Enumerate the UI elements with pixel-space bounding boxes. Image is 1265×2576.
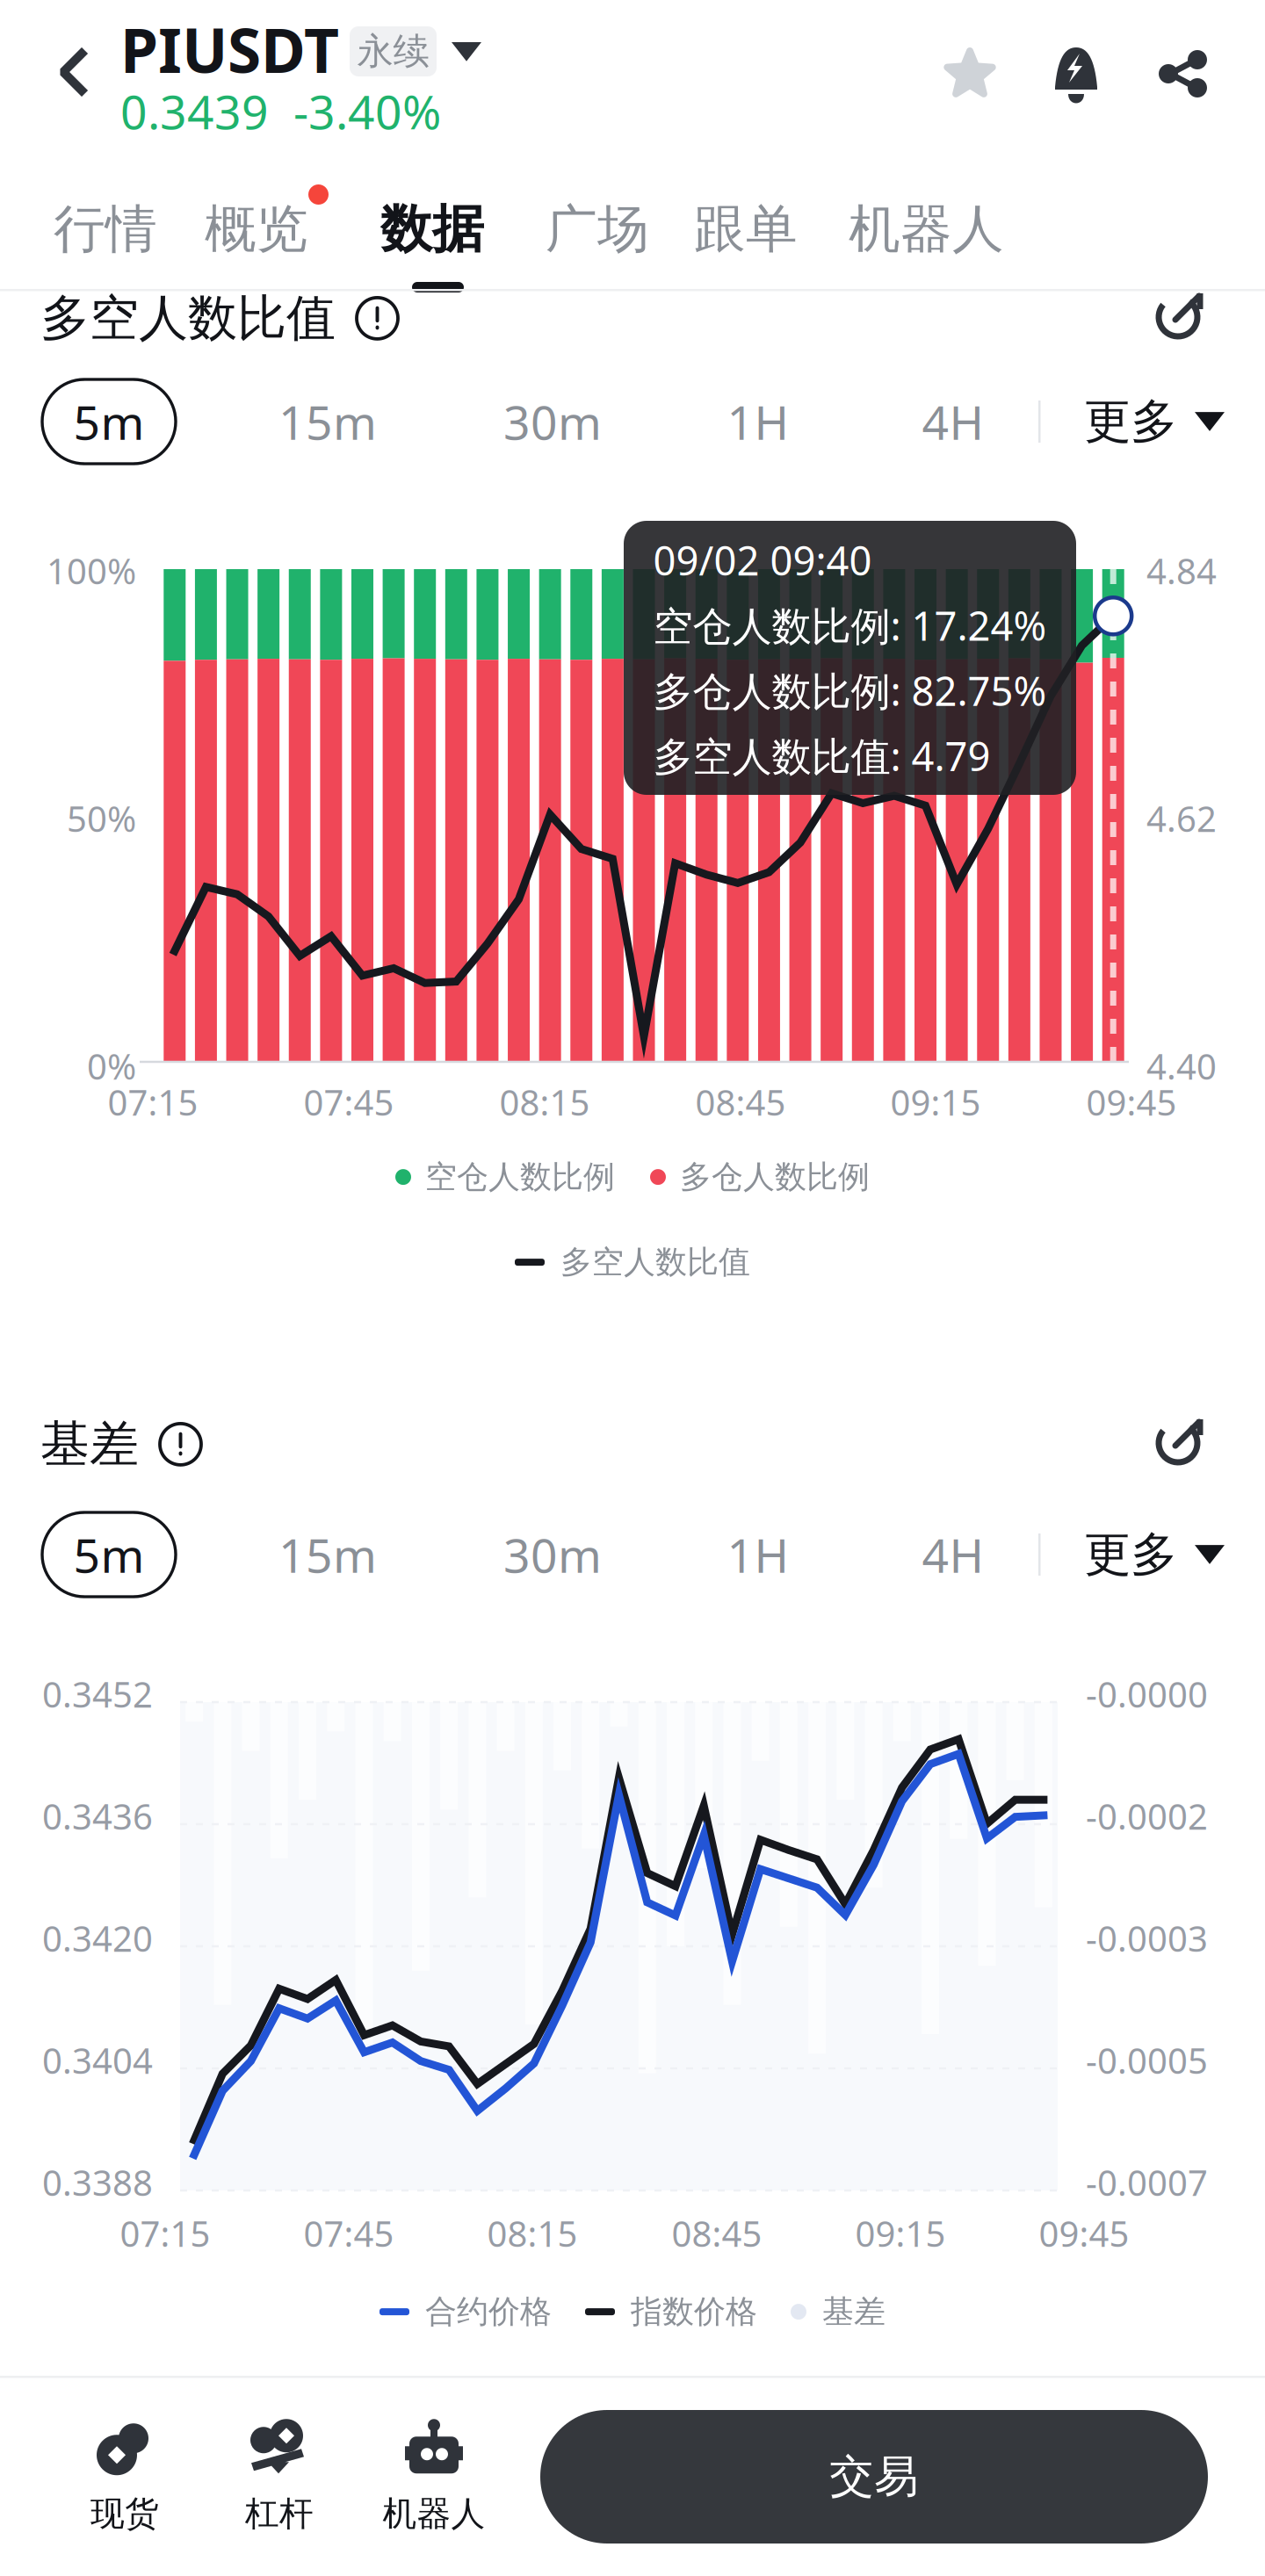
- button[interactable]: 4H: [898, 379, 1008, 464]
- button[interactable]: Share: [1138, 28, 1229, 119]
- staticText: 多仓人数比例: 82.75%: [653, 664, 1047, 717]
- staticText: 空仓人数比例: [425, 1158, 615, 1196]
- staticText: 08:15: [487, 2210, 578, 2256]
- staticText: 07:45: [304, 2210, 394, 2256]
- button[interactable]: 概览: [205, 177, 308, 282]
- staticText: 基差: [822, 2292, 885, 2331]
- button[interactable]: Open full chart: [1140, 274, 1221, 355]
- staticText: 数据: [380, 198, 484, 261]
- staticText: 30m: [503, 390, 602, 453]
- staticText: 4H: [922, 1523, 984, 1586]
- button[interactable]: Open full chart: [1140, 1400, 1221, 1481]
- staticText: -0.0007: [1086, 2159, 1208, 2206]
- staticText: 15m: [278, 1523, 377, 1586]
- staticText: 多空人数比值: [560, 1243, 750, 1282]
- staticText: 0%: [87, 1043, 136, 1089]
- staticText: 5m: [73, 1523, 145, 1586]
- button[interactable]: 跟单: [694, 177, 798, 282]
- staticText: 09:15: [855, 2210, 946, 2256]
- staticText: 09:15: [890, 1079, 981, 1125]
- staticText: 跟单: [694, 198, 798, 261]
- button[interactable]: 机器人: [358, 2406, 510, 2547]
- button[interactable]: 5m: [42, 1512, 176, 1597]
- staticText: 08:45: [672, 2210, 762, 2256]
- staticText: 1H: [727, 1523, 789, 1586]
- button[interactable]: Price alerts: [1030, 28, 1122, 119]
- staticText: 概览: [205, 198, 308, 261]
- button[interactable]: 1H: [703, 379, 813, 464]
- staticText: -0.0003: [1086, 1915, 1208, 1961]
- staticText: 15m: [278, 390, 377, 453]
- staticText: 50%: [67, 795, 136, 842]
- button[interactable]: 现货: [49, 2406, 200, 2547]
- staticText: 基差: [40, 1414, 139, 1474]
- staticText: 1H: [727, 390, 789, 453]
- staticText: 机器人: [383, 2493, 485, 2535]
- staticText: -0.0002: [1086, 1793, 1208, 1839]
- button[interactable]: 15m: [272, 1512, 383, 1597]
- staticText: 0.3388: [42, 2159, 153, 2206]
- button[interactable]: 1H: [703, 1512, 813, 1597]
- staticText: 4.84: [1146, 547, 1217, 594]
- button[interactable]: 交易: [540, 2410, 1208, 2544]
- staticText: 30m: [503, 1523, 602, 1586]
- staticText: 更多: [1084, 393, 1177, 450]
- staticText: -0.0005: [1086, 2037, 1208, 2083]
- staticText: 08:15: [499, 1079, 590, 1125]
- staticText: 07:15: [108, 1079, 198, 1125]
- staticText: 空仓人数比例: 17.24%: [653, 599, 1047, 652]
- staticText: 4H: [922, 390, 984, 453]
- staticText: 机器人: [849, 198, 1004, 261]
- button[interactable]: 5m: [42, 379, 176, 464]
- button[interactable]: 行情: [54, 177, 157, 282]
- button[interactable]: 15m: [272, 379, 383, 464]
- staticText: 07:45: [304, 1079, 394, 1125]
- staticText: 杠杆: [245, 2493, 314, 2535]
- staticText: 100%: [47, 547, 136, 594]
- staticText: -0.0000: [1086, 1671, 1208, 1717]
- staticText: 现货: [90, 2493, 159, 2535]
- staticText: 交易: [829, 2449, 919, 2504]
- staticText: 指数价格: [631, 2292, 757, 2331]
- staticText: 永续: [357, 29, 429, 74]
- button[interactable]: 更多: [1077, 379, 1232, 464]
- staticText: 广场: [546, 198, 649, 261]
- staticText: 更多: [1084, 1526, 1177, 1583]
- button[interactable]: 广场: [546, 177, 649, 282]
- staticText: 09/02 09:40: [653, 534, 872, 587]
- staticText: 4.62: [1146, 795, 1217, 842]
- button[interactable]: 杠杆: [204, 2406, 355, 2547]
- staticText: 4.40: [1146, 1043, 1217, 1089]
- staticText: 0.3452: [42, 1671, 153, 1717]
- staticText: 09:45: [1086, 1079, 1177, 1125]
- button[interactable]: 30m: [497, 1512, 608, 1597]
- button[interactable]: 数据: [380, 177, 484, 282]
- staticText: 多空人数比值: 4.79: [653, 729, 990, 782]
- staticText: 08:45: [695, 1079, 786, 1125]
- button[interactable]: 更多: [1077, 1512, 1232, 1597]
- staticText: 0.3420: [42, 1915, 153, 1961]
- staticText: 09:45: [1039, 2210, 1129, 2256]
- staticText: 07:15: [120, 2210, 210, 2256]
- staticText: PIUSDT: [120, 9, 339, 90]
- staticText: 5m: [73, 390, 145, 453]
- button[interactable]: Add to favourites: [924, 28, 1016, 119]
- staticText: 0.3404: [42, 2037, 153, 2083]
- button[interactable]: 30m: [497, 379, 608, 464]
- staticText: 多仓人数比例: [680, 1158, 870, 1196]
- staticText: 合约价格: [425, 2292, 552, 2331]
- staticText: 多空人数比值: [40, 288, 336, 349]
- button[interactable]: 机器人: [849, 177, 1004, 282]
- staticText: 0.3436: [42, 1793, 153, 1839]
- button[interactable]: 4H: [898, 1512, 1008, 1597]
- staticText: 行情: [54, 198, 157, 261]
- button[interactable]: Back: [21, 15, 125, 129]
- staticText: 0.3439 -3.40%: [120, 80, 441, 142]
